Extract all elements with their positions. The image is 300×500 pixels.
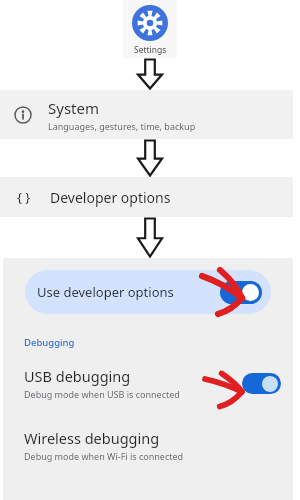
button[interactable]: Toggle	[242, 373, 281, 394]
staticText: System	[48, 98, 99, 118]
button[interactable]: System	[0, 90, 293, 139]
staticText: Wireless debugging	[24, 428, 160, 448]
button[interactable]: Settings	[123, 0, 177, 58]
button[interactable]: USB debugging	[3, 362, 293, 404]
staticText: Settings	[134, 44, 167, 56]
button[interactable]: { }	[0, 177, 293, 217]
button[interactable]: Use developer options	[25, 270, 271, 314]
staticText: Use developer options	[37, 283, 174, 301]
staticText: Developer options	[50, 188, 171, 207]
button[interactable]: Toggle	[220, 281, 262, 304]
staticText: Debug mode when Wi-Fi is connected	[24, 450, 184, 462]
staticText: { }	[17, 188, 31, 206]
staticText: Debugging	[24, 336, 75, 349]
staticText: Debug mode when USB is connected	[24, 388, 180, 400]
button[interactable]: Wireless debugging	[3, 424, 293, 466]
staticText: Languages, gestures, time, backup	[48, 120, 196, 132]
staticText: USB debugging	[24, 366, 131, 386]
